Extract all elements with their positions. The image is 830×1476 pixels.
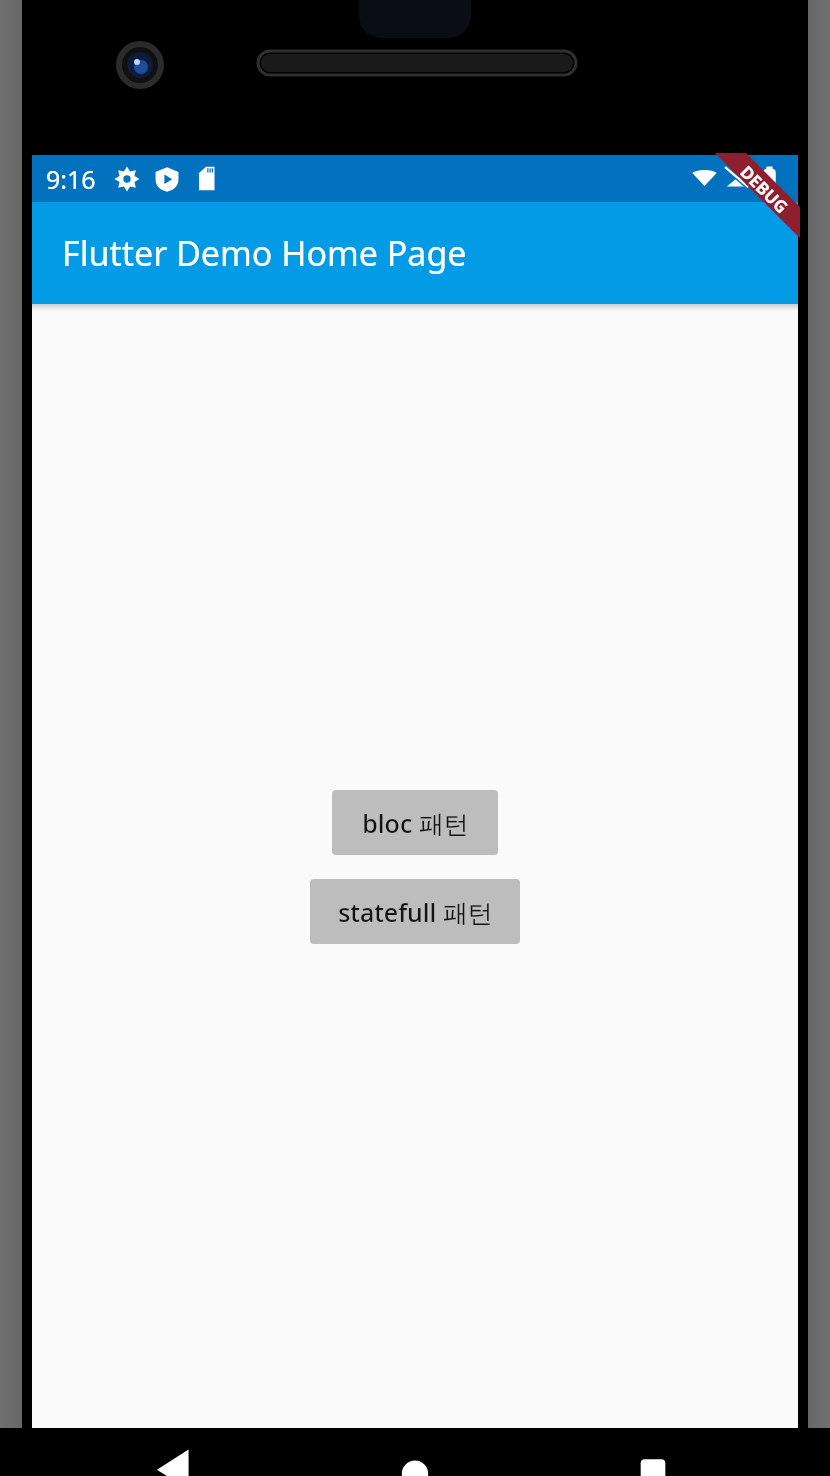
staticText: 9:16 [46,162,96,196]
button[interactable]: bloc 패턴 [332,790,498,855]
staticText: statefull 패턴 [338,895,493,929]
button[interactable]: Home [355,1428,475,1476]
staticText: DEBUG [735,160,793,218]
staticText: bloc 패턴 [362,806,469,840]
button[interactable]: Recent apps [593,1428,713,1476]
button[interactable]: Back [118,1428,238,1476]
button[interactable]: statefull 패턴 [310,879,520,944]
staticText: Flutter Demo Home Page [62,230,467,276]
